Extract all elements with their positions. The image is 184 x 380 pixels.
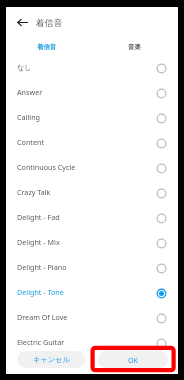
button[interactable]: Calling bbox=[6, 106, 178, 131]
staticText: OK bbox=[128, 355, 139, 365]
staticText: Electric Guitar bbox=[17, 337, 65, 347]
button[interactable]: Delight - Fad bbox=[6, 206, 178, 231]
button[interactable]: Delight - Mix bbox=[6, 231, 178, 256]
staticText: Content bbox=[17, 137, 45, 147]
staticText: Answer bbox=[17, 87, 43, 97]
staticText: Continuous Cycle bbox=[17, 162, 76, 172]
button[interactable]: 音楽 bbox=[92, 38, 178, 56]
button[interactable]: OK bbox=[98, 351, 168, 368]
button[interactable]: Content bbox=[6, 131, 178, 156]
button[interactable]: Crazy Talk bbox=[6, 181, 178, 206]
staticText: 着信音 bbox=[37, 43, 57, 51]
staticText: キャンセル bbox=[33, 355, 70, 364]
staticText: Delight - Mix bbox=[17, 237, 60, 247]
staticText: Delight - Piano bbox=[17, 262, 67, 272]
staticText: Delight - Fad bbox=[17, 212, 60, 222]
staticText: 着信音 bbox=[36, 18, 63, 29]
staticText: Crazy Talk bbox=[17, 187, 51, 197]
button[interactable]: Dream Of Love bbox=[6, 306, 178, 331]
button[interactable]: 着信音 bbox=[6, 38, 92, 56]
staticText: 音楽 bbox=[128, 43, 141, 51]
staticText: なし bbox=[17, 63, 32, 72]
button[interactable]: Continuous Cycle bbox=[6, 156, 178, 181]
button[interactable]: キャンセル bbox=[17, 351, 85, 368]
button[interactable]: なし bbox=[6, 56, 178, 81]
button[interactable]: Electric Guitar bbox=[6, 331, 178, 356]
button[interactable]: Delight - Tone bbox=[6, 281, 178, 306]
button[interactable]: Back bbox=[14, 14, 31, 31]
staticText: Delight - Tone bbox=[17, 287, 64, 297]
staticText: Calling bbox=[17, 112, 41, 122]
button[interactable]: Delight - Piano bbox=[6, 256, 178, 281]
button[interactable]: Answer bbox=[6, 81, 178, 106]
staticText: Dream Of Love bbox=[17, 312, 68, 322]
